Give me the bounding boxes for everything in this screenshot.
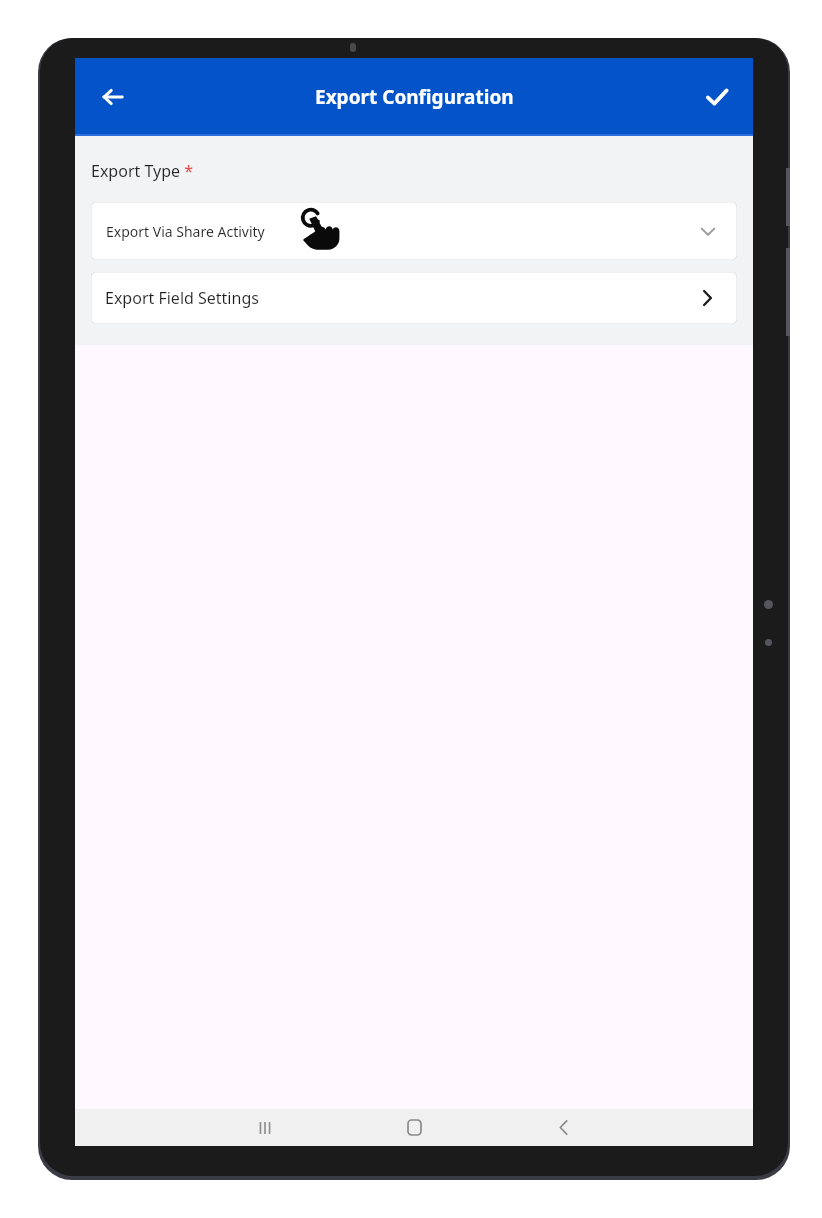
staticText: Export Via Share Activity: [106, 222, 265, 241]
button[interactable]: Recent apps: [241, 1109, 289, 1146]
button[interactable]: Save configuration: [693, 73, 741, 121]
button[interactable]: Back: [89, 73, 137, 121]
button[interactable]: Back: [539, 1109, 587, 1146]
button[interactable]: Export Via Share Activity: [91, 202, 737, 260]
button[interactable]: Home: [390, 1109, 438, 1146]
staticText: Export Type *: [91, 160, 194, 182]
staticText: Export Configuration: [315, 84, 514, 110]
staticText: Export Field Settings: [105, 287, 259, 309]
button[interactable]: Export Field Settings: [91, 272, 737, 324]
